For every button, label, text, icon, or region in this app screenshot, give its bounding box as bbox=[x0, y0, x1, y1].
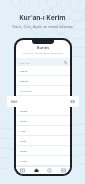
staticText: Sure Ara... bbox=[19, 61, 31, 64]
button[interactable]: Kur'an bbox=[16, 167, 29, 174]
button[interactable]: Kehf bbox=[7, 96, 79, 107]
staticText: Âl-i İmrân bbox=[20, 89, 32, 92]
other: Diğer bbox=[61, 168, 66, 173]
staticText: Enfâl bbox=[20, 139, 26, 142]
button[interactable]: En'âm bbox=[16, 116, 70, 126]
staticText: A'râf bbox=[20, 129, 26, 132]
staticText: Tevbe bbox=[20, 149, 27, 152]
staticText: Mâide bbox=[20, 109, 28, 112]
button[interactable]: Tevbe bbox=[16, 146, 70, 156]
staticText: Sure ve cüz seçerek okuma yapabilirsiniz bbox=[23, 52, 63, 55]
button[interactable]: Bakara bbox=[16, 76, 70, 86]
button[interactable]: Mâide bbox=[16, 106, 70, 116]
button[interactable]: Yûnus bbox=[16, 156, 70, 166]
button[interactable]: Diğer bbox=[57, 167, 70, 174]
staticText: Fâtiha bbox=[20, 69, 28, 72]
button[interactable]: Fâtiha bbox=[16, 66, 70, 76]
staticText: Bakara bbox=[20, 79, 29, 82]
staticText: Sure, Cüz, Ayet ve meal okuma bbox=[12, 24, 73, 30]
button[interactable]: Âl-i İmrân bbox=[16, 86, 70, 96]
other: Ara bbox=[64, 61, 67, 64]
button[interactable]: A'râf bbox=[16, 126, 70, 136]
staticText: Kur'an bbox=[37, 45, 49, 50]
staticText: Yûnus bbox=[20, 159, 28, 162]
staticText: Kur'an-ı Kerim bbox=[19, 13, 66, 22]
button[interactable]: Sure Ara... bbox=[16, 58, 70, 66]
other: Kur'an bbox=[20, 168, 25, 173]
staticText: En'âm bbox=[20, 119, 28, 122]
other: Oku bbox=[70, 99, 75, 104]
button[interactable]: Enfâl bbox=[16, 136, 70, 146]
other: Namaz bbox=[34, 168, 39, 173]
button[interactable]: Nisâ bbox=[16, 96, 70, 106]
button[interactable]: Namaz bbox=[30, 167, 43, 174]
other: Kıble bbox=[47, 168, 52, 173]
button[interactable]: Kıble bbox=[43, 167, 56, 174]
staticText: Kehf bbox=[11, 100, 18, 104]
